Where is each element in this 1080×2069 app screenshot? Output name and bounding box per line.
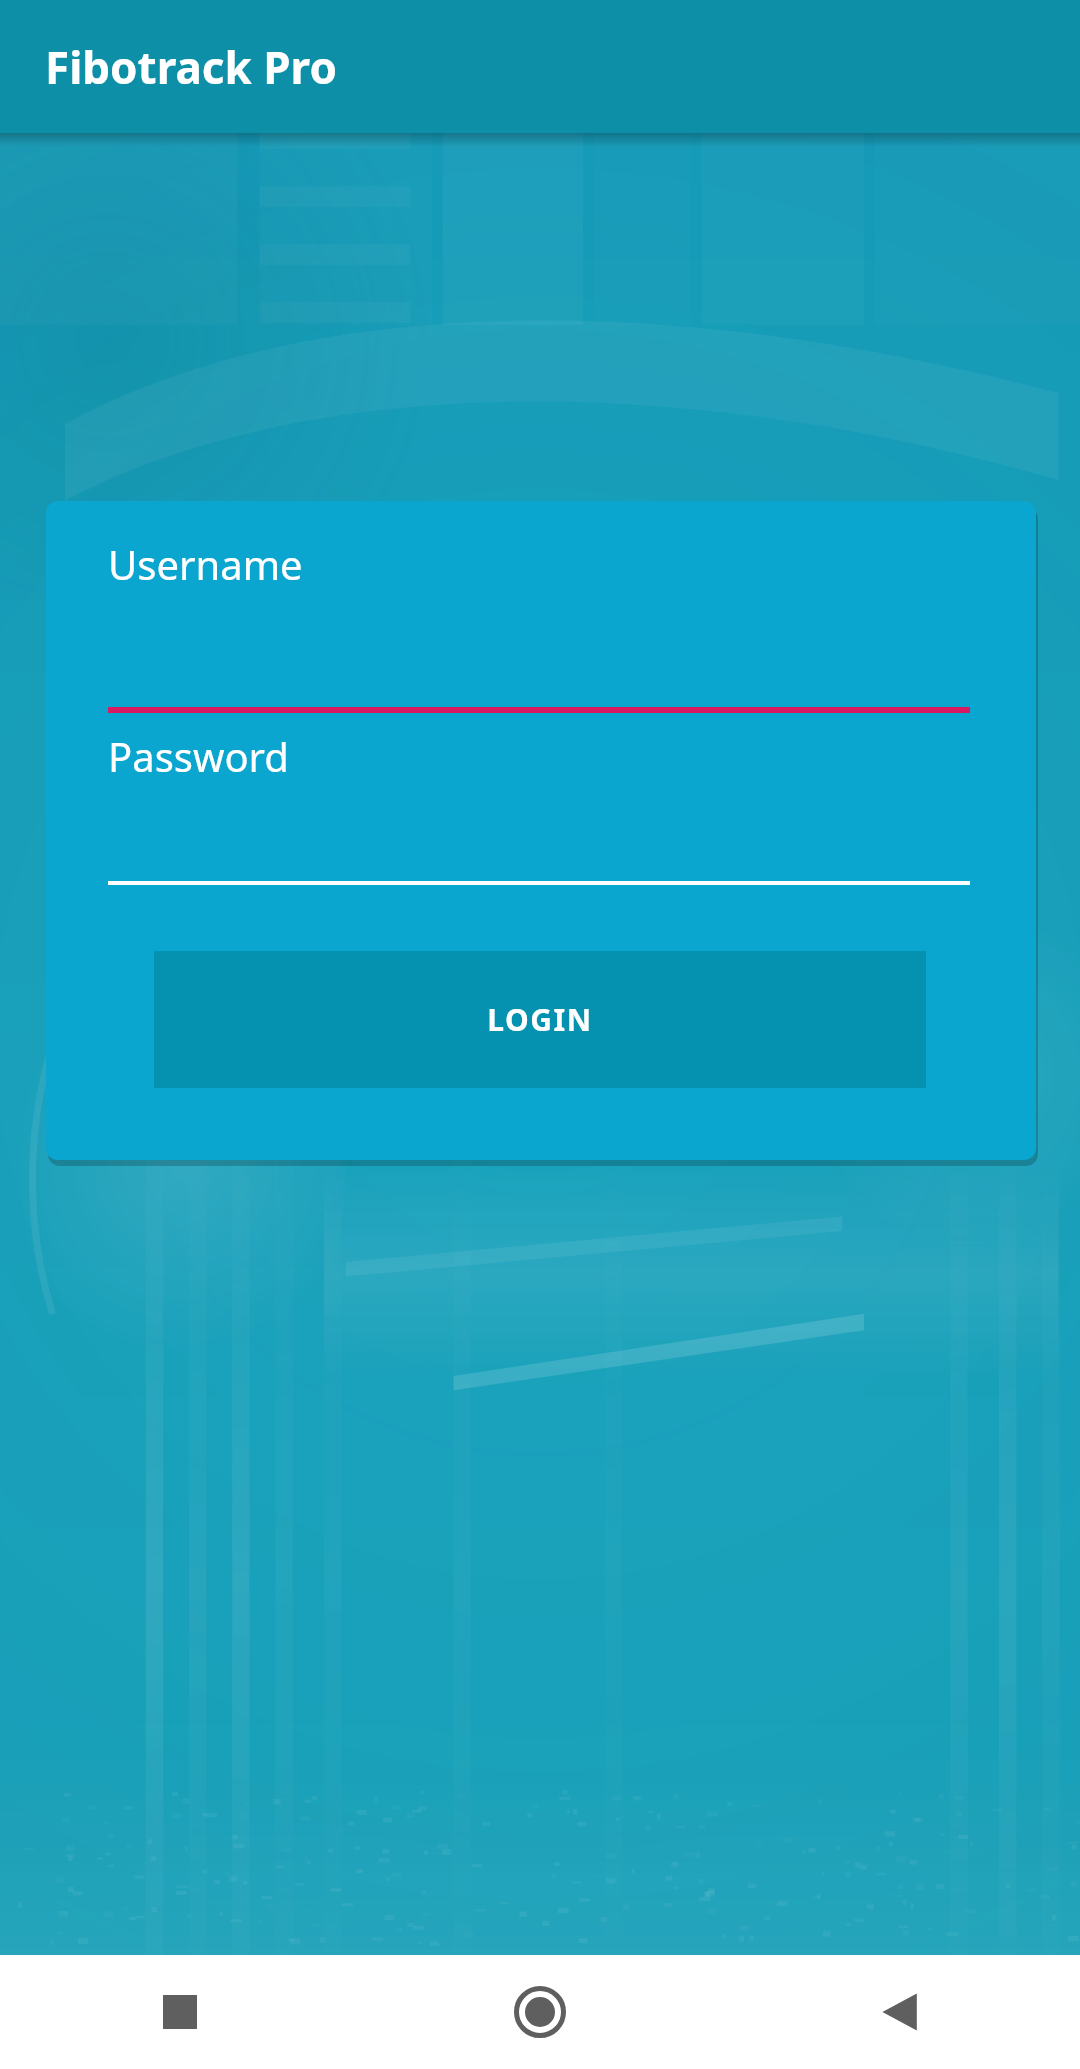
button[interactable]: Home [360,1955,720,2069]
button[interactable]: Password [108,729,970,885]
button[interactable]: Username [108,537,970,713]
button[interactable]: Back [720,1955,1080,2069]
staticText: Username [108,537,303,591]
staticText: Fibotrack Pro [45,37,337,97]
button[interactable]: Recent apps [0,1955,360,2069]
staticText: LOGIN [487,999,593,1040]
staticText: Password [108,729,289,783]
button[interactable]: LOGIN [154,951,926,1088]
